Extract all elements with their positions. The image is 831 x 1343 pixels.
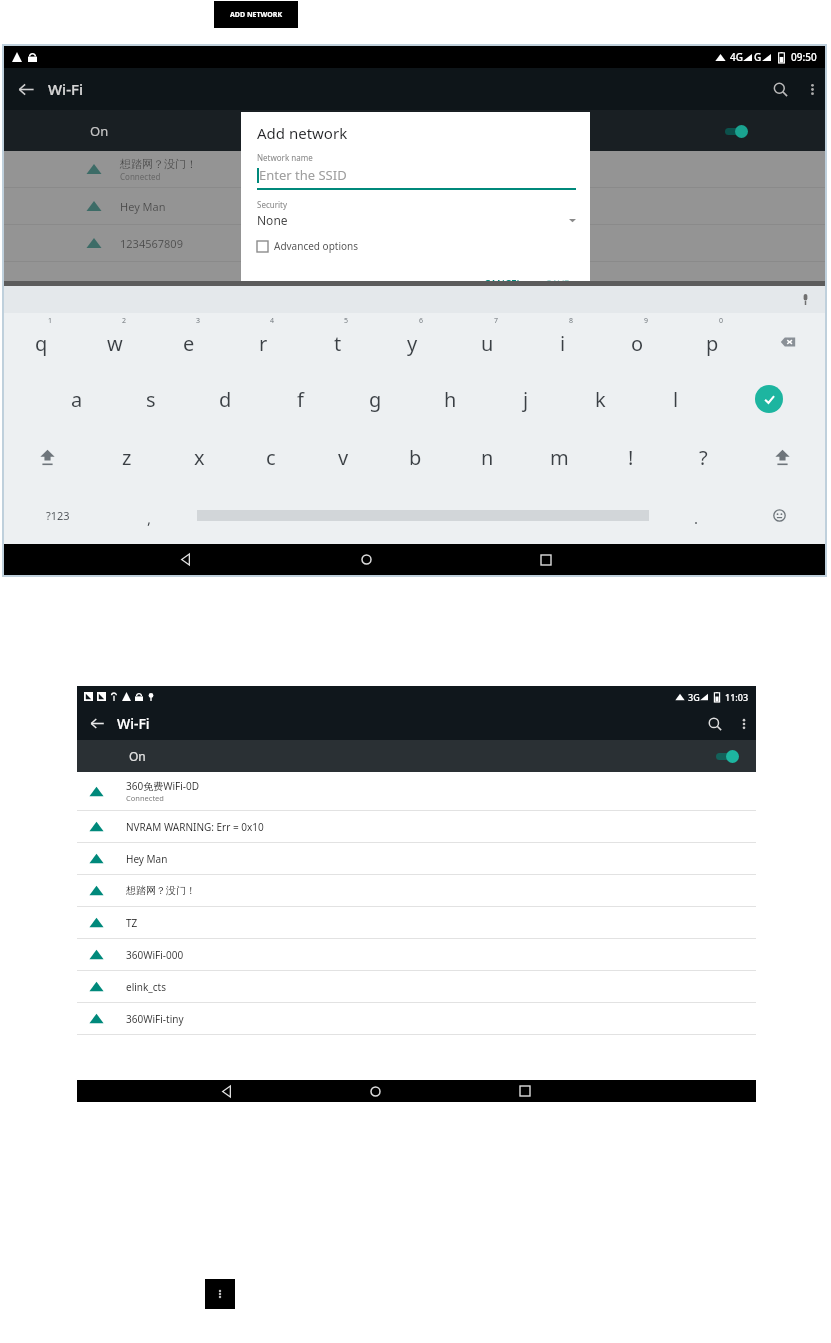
- button[interactable]: d: [188, 370, 263, 428]
- button[interactable]: Recents: [450, 1080, 599, 1102]
- button[interactable]: On: [77, 740, 756, 772]
- button[interactable]: Shift: [739, 428, 825, 486]
- staticText: None: [257, 212, 288, 228]
- button[interactable]: 4: [226, 313, 300, 370]
- button[interactable]: Search: [761, 68, 799, 110]
- button[interactable]: Shift: [4, 428, 91, 486]
- button[interactable]: z: [91, 428, 163, 486]
- staticText: Wi-Fi: [117, 714, 150, 733]
- staticText: ?123: [46, 508, 70, 523]
- button[interactable]: 360WiFi-000: [77, 939, 756, 970]
- button[interactable]: k: [563, 370, 638, 428]
- button[interactable]: NVRAM WARNING: Err = 0x10: [77, 811, 756, 842]
- staticText: c: [266, 444, 276, 471]
- staticText: Add network: [257, 123, 348, 143]
- button[interactable]: 2: [78, 313, 152, 370]
- button[interactable]: Search: [698, 707, 732, 740]
- staticText: v: [338, 444, 349, 471]
- button[interactable]: l: [638, 370, 713, 428]
- button[interactable]: On: [4, 110, 825, 151]
- button[interactable]: Emoji: [734, 486, 825, 544]
- staticText: CANCEL: [484, 277, 522, 291]
- button[interactable]: Back: [152, 1080, 301, 1102]
- staticText: Wi-Fi: [48, 79, 83, 99]
- button[interactable]: Hey Man: [4, 188, 825, 224]
- button[interactable]: j: [488, 370, 563, 428]
- button[interactable]: 9: [600, 313, 675, 370]
- staticText: 11:03: [725, 691, 749, 703]
- button[interactable]: x: [163, 428, 235, 486]
- button[interactable]: Advanced options: [257, 239, 359, 253]
- button[interactable]: 8: [525, 313, 600, 370]
- staticText: s: [146, 386, 156, 413]
- staticText: TZ: [126, 916, 138, 930]
- button[interactable]: Space: [187, 486, 658, 544]
- button[interactable]: g: [338, 370, 413, 428]
- button[interactable]: 想踏网？没门！: [4, 151, 825, 187]
- button[interactable]: ?123: [4, 486, 111, 544]
- button[interactable]: ADD NETWORK: [214, 1, 298, 28]
- button[interactable]: v: [307, 428, 379, 486]
- button[interactable]: Backspace: [750, 313, 825, 370]
- button[interactable]: None: [257, 212, 576, 228]
- staticText: 360WiFi-tiny: [126, 1012, 184, 1026]
- staticText: t: [334, 330, 342, 357]
- button[interactable]: f: [263, 370, 338, 428]
- staticText: b: [409, 444, 422, 471]
- button[interactable]: Back: [95, 544, 276, 575]
- button[interactable]: !: [595, 428, 667, 486]
- staticText: Hey Man: [120, 199, 166, 214]
- button[interactable]: h: [413, 370, 488, 428]
- staticText: On: [90, 122, 109, 140]
- button[interactable]: Recents: [456, 544, 636, 575]
- button[interactable]: Enter: [713, 370, 825, 428]
- button[interactable]: 想踏网？没门！: [77, 875, 756, 906]
- button[interactable]: Back: [4, 68, 48, 110]
- staticText: NVRAM WARNING: Err = 0x10: [126, 820, 264, 834]
- staticText: n: [481, 444, 494, 471]
- staticText: ADD NETWORK: [230, 10, 283, 20]
- staticText: r: [259, 330, 268, 357]
- staticText: i: [560, 330, 566, 357]
- button[interactable]: TZ: [77, 907, 756, 938]
- button[interactable]: 1234567809: [4, 225, 825, 261]
- button[interactable]: [714, 749, 740, 763]
- staticText: 想踏网？没门！: [126, 884, 196, 897]
- button[interactable]: elink_cts: [77, 971, 756, 1002]
- button[interactable]: m: [523, 428, 595, 486]
- button[interactable]: 3: [152, 313, 226, 370]
- button[interactable]: More options: [205, 1279, 235, 1309]
- button[interactable]: ?: [667, 428, 739, 486]
- button[interactable]: CANCEL: [478, 273, 528, 295]
- button[interactable]: 5: [300, 313, 375, 370]
- button[interactable]: a: [40, 370, 114, 428]
- staticText: 7: [494, 316, 499, 326]
- button[interactable]: More options: [732, 707, 756, 740]
- button[interactable]: SAVE: [540, 273, 576, 295]
- button[interactable]: 1: [4, 313, 78, 370]
- button[interactable]: s: [114, 370, 188, 428]
- staticText: j: [523, 386, 529, 413]
- staticText: f: [297, 386, 304, 413]
- button[interactable]: ,: [111, 486, 187, 544]
- button[interactable]: [723, 124, 749, 138]
- button[interactable]: 360WiFi-tiny: [77, 1003, 756, 1034]
- staticText: 3G: [688, 691, 700, 703]
- button[interactable]: 360免费WiFi-0D: [77, 772, 756, 810]
- button[interactable]: b: [379, 428, 451, 486]
- staticText: !: [628, 444, 634, 471]
- button[interactable]: Back: [77, 707, 117, 740]
- button[interactable]: More options: [799, 68, 825, 110]
- button[interactable]: 0: [675, 313, 750, 370]
- staticText: Advanced options: [274, 239, 359, 253]
- button[interactable]: Home: [301, 1080, 450, 1102]
- button[interactable]: 7: [450, 313, 525, 370]
- button[interactable]: Home: [276, 544, 456, 575]
- button[interactable]: 6: [375, 313, 450, 370]
- button[interactable]: .: [658, 486, 734, 544]
- button[interactable]: n: [451, 428, 523, 486]
- button[interactable]: Hey Man: [77, 843, 756, 874]
- button[interactable]: c: [235, 428, 307, 486]
